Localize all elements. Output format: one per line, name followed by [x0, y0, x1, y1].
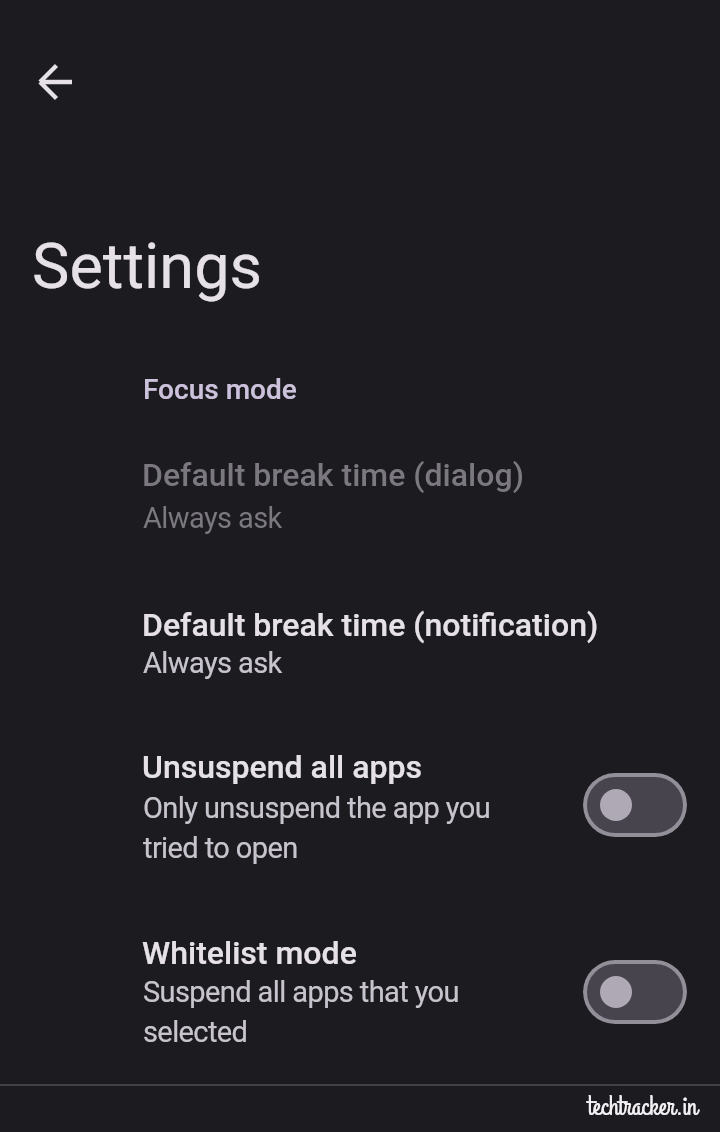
staticText: Suspend all apps that you	[143, 975, 459, 1009]
button[interactable]	[583, 773, 687, 837]
staticText: Default break time (notification)	[142, 606, 599, 644]
staticText: techtracker.in	[588, 1088, 698, 1125]
button[interactable]: Unsuspend all apps	[0, 732, 720, 882]
staticText: Whitelist mode	[142, 934, 357, 972]
staticText: Default break time (dialog)	[142, 456, 524, 494]
button[interactable]: Default break time (notification)	[0, 590, 720, 704]
staticText: selected	[143, 1015, 248, 1049]
button[interactable]	[583, 960, 687, 1024]
staticText: Always ask	[143, 646, 282, 680]
staticText: tried to open	[143, 831, 298, 865]
button[interactable]: Default break time (dialog)	[0, 440, 720, 554]
staticText: Unsuspend all apps	[142, 748, 423, 786]
button[interactable]: Whitelist mode	[0, 918, 720, 1066]
staticText: Settings	[32, 230, 263, 304]
button[interactable]	[32, 58, 80, 106]
staticText: Focus mode	[143, 373, 297, 406]
staticText: Always ask	[143, 501, 282, 535]
staticText: Only unsuspend the app you	[143, 791, 491, 825]
